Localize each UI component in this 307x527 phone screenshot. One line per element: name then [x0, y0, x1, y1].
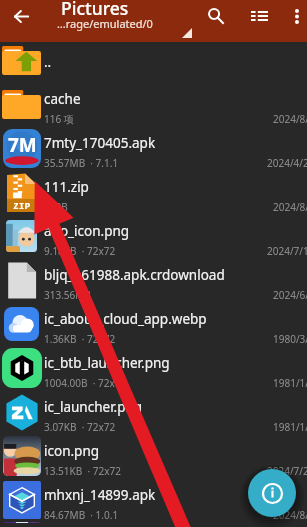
staticText: 2024/7/15	[267, 244, 307, 258]
button[interactable]: icon.png	[0, 438, 307, 482]
staticText: 116 项	[44, 112, 74, 126]
staticText: ZIP	[13, 199, 31, 212]
button[interactable]: space.apk	[0, 526, 307, 527]
button[interactable]: abo_icon.png	[0, 218, 307, 262]
staticText: 1980/3/4	[273, 332, 307, 346]
button[interactable]: More options	[282, 0, 307, 32]
staticText: ic_launcher.png	[44, 398, 143, 416]
staticText: 2024/6/4	[273, 288, 307, 302]
staticText: ic_about_cloud_app.webp	[44, 310, 207, 328]
staticText: 1.36KB · 72x72	[44, 332, 116, 346]
staticText: 9.18KB · 72x72	[44, 244, 116, 258]
staticText: icon.png	[44, 442, 100, 460]
button[interactable]: ic_launcher.png	[0, 394, 307, 438]
staticText: ic_btb_launcher.png	[44, 354, 170, 372]
button[interactable]: ic_about_cloud_app.webp	[0, 306, 307, 350]
staticText: 2024/8/7	[273, 112, 307, 126]
staticText: …rage/emulated/0	[57, 16, 153, 31]
button[interactable]: mhxnj_14899.apk	[0, 482, 307, 526]
staticText: 3.07KB · 72x72	[44, 420, 116, 434]
button[interactable]: ZIP	[0, 174, 307, 218]
staticText: 13.51KB · 72x72	[44, 464, 121, 478]
staticText: 2024/8/7	[273, 508, 307, 522]
staticText: 1981/1/1	[273, 376, 307, 390]
button[interactable]: cache	[0, 86, 307, 130]
staticText: 111.zip	[44, 178, 89, 196]
button[interactable]: bljq_161988.apk.crdownload	[0, 262, 307, 306]
staticText: 7mty_170405.apk	[44, 134, 156, 152]
staticText: cache	[44, 90, 81, 108]
staticText: 313.56MB	[44, 288, 91, 302]
staticText: ..	[44, 53, 52, 71]
staticText: 1981/1/1	[273, 420, 307, 434]
button[interactable]: ..	[0, 42, 307, 86]
staticText: 2024/8/7	[273, 200, 307, 214]
button[interactable]: View mode	[243, 0, 275, 32]
staticText: abo_icon.png	[44, 222, 130, 240]
staticText: 2024/7/24	[267, 464, 307, 478]
button[interactable]: 7M	[0, 130, 307, 174]
staticText: 84.67MB · 1.0.1	[44, 508, 119, 522]
staticText: 300B	[44, 200, 68, 214]
staticText: mhxnj_14899.apk	[44, 486, 156, 504]
staticText: 2024/4/21	[267, 156, 307, 170]
button[interactable]: ic_btb_launcher.png	[0, 350, 307, 394]
button[interactable]: Search	[200, 0, 232, 32]
button[interactable]: Info	[248, 469, 296, 517]
staticText: Pictures	[61, 0, 129, 20]
staticText: 7M	[8, 132, 37, 158]
staticText: bljq_161988.apk.crdownload	[44, 266, 225, 284]
staticText: 1004.00B · 72x72	[44, 376, 127, 390]
button[interactable]: Back	[0, 0, 42, 32]
staticText: 35.57MB · 7.1.1	[44, 156, 119, 170]
